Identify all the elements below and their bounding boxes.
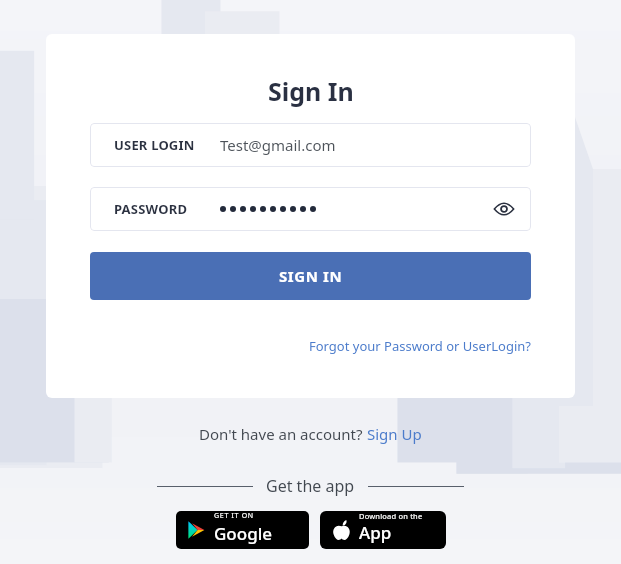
button[interactable]: Show password [491, 196, 517, 222]
staticText: Sign In [268, 74, 354, 108]
button[interactable]: Get it on Google Play [176, 511, 309, 549]
staticText: Forgot your Password or UserLogin? [309, 337, 531, 355]
staticText: Google Play [214, 522, 299, 549]
button[interactable]: Download on the App Store [320, 511, 446, 549]
button[interactable]: PASSWORD [90, 187, 531, 231]
staticText: GET IT ON [214, 511, 254, 521]
staticText: Get the app [266, 475, 355, 497]
button[interactable]: SIGN IN [90, 252, 531, 300]
button[interactable]: USER LOGIN [90, 123, 531, 167]
staticText: Test@gmail.com [220, 135, 336, 155]
staticText: Sign Up [367, 424, 422, 444]
staticText: PASSWORD [114, 200, 188, 218]
button[interactable]: Forgot your Password or UserLogin? [309, 337, 531, 355]
staticText: Don't have an account? [199, 424, 367, 444]
staticText: USER LOGIN [114, 136, 195, 154]
button[interactable]: Sign Up [367, 424, 422, 444]
staticText: SIGN IN [279, 266, 343, 286]
staticText: Download on the [359, 511, 423, 521]
staticText: App Store [359, 521, 436, 549]
